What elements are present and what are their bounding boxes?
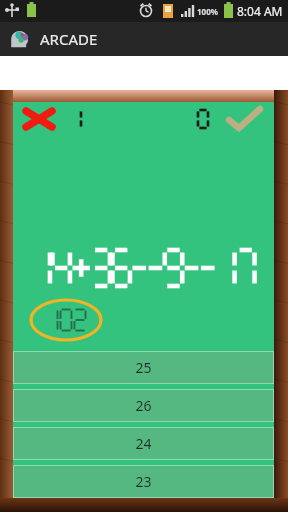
button[interactable]: 23 xyxy=(13,465,274,498)
staticText: ARCADE xyxy=(40,29,98,49)
other: App icon xyxy=(9,28,31,50)
staticText: 24 xyxy=(135,434,152,453)
button[interactable]: 24 xyxy=(13,427,274,460)
staticText: 26 xyxy=(135,396,152,415)
button[interactable]: 25 xyxy=(13,351,274,384)
button[interactable]: 26 xyxy=(13,389,274,422)
staticText: 23 xyxy=(135,472,152,491)
staticText: 8:04 AM xyxy=(237,3,283,19)
staticText: 100% xyxy=(197,6,218,17)
staticText: 25 xyxy=(135,358,152,377)
